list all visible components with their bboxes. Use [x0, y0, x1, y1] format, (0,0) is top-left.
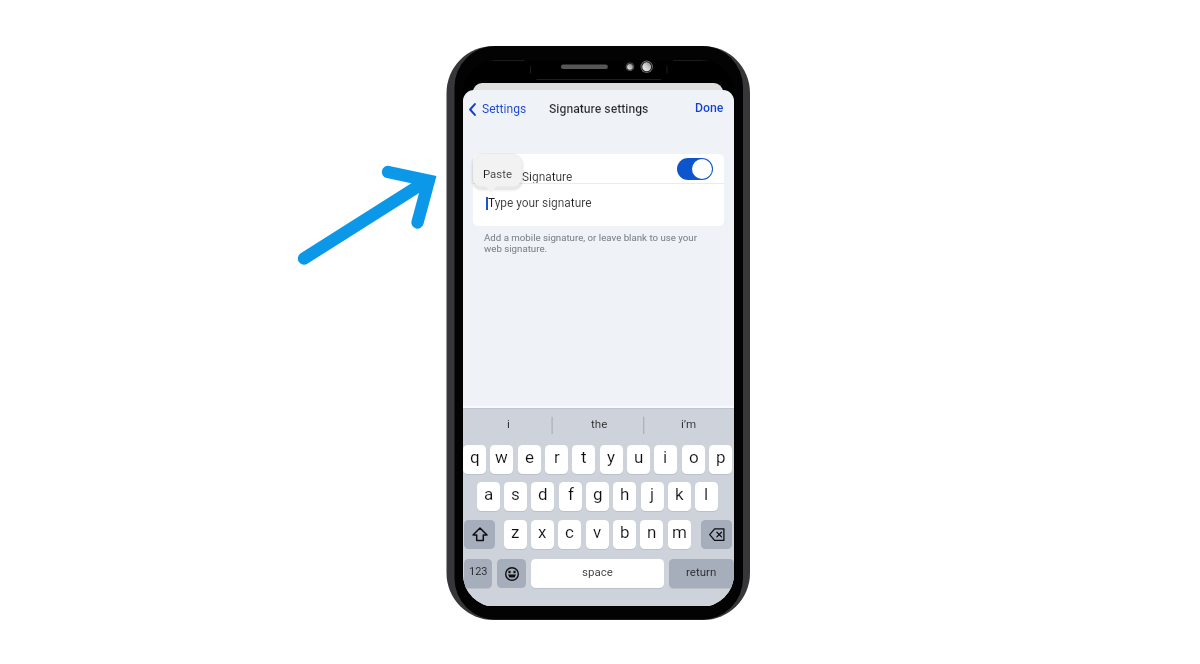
staticText: Signature settings [549, 102, 649, 116]
button[interactable]: h [613, 482, 636, 511]
button[interactable]: a [477, 482, 500, 511]
button[interactable]: Signature [473, 154, 724, 183]
staticText: a [484, 484, 494, 504]
staticText: r [554, 447, 560, 467]
staticText: f [568, 484, 574, 504]
button[interactable]: Settings [466, 100, 530, 120]
staticText: y [607, 447, 616, 467]
staticText: i’m [681, 417, 697, 431]
staticText: Paste [483, 167, 512, 180]
staticText: c [565, 522, 574, 542]
button[interactable]: e [518, 445, 541, 474]
staticText: space [582, 565, 613, 578]
button[interactable]: Paste [473, 154, 522, 187]
staticText: t [581, 447, 587, 467]
button[interactable]: Signature enabled [677, 158, 713, 180]
staticText: Add a mobile signature, or leave blank t… [484, 232, 700, 255]
button[interactable]: n [640, 520, 663, 549]
staticText: l [704, 484, 709, 504]
staticText: 123 [469, 565, 488, 578]
staticText: u [634, 447, 644, 467]
staticText: return [686, 565, 717, 578]
staticText: d [538, 484, 548, 504]
staticText: m [672, 522, 687, 542]
button[interactable]: i [654, 445, 677, 474]
staticText: z [511, 522, 520, 542]
button[interactable]: c [558, 520, 581, 549]
button[interactable]: Backspace [701, 520, 732, 549]
button[interactable]: w [490, 445, 513, 474]
button[interactable]: x [531, 520, 554, 549]
button[interactable]: m [668, 520, 691, 549]
button[interactable]: f [559, 482, 582, 511]
button[interactable]: t [572, 445, 595, 474]
staticText: i [663, 447, 668, 467]
button[interactable]: d [531, 482, 554, 511]
staticText: g [593, 484, 603, 504]
staticText: Type your signature [488, 196, 592, 210]
staticText: q [470, 447, 480, 467]
button[interactable]: Shift [464, 520, 495, 549]
button[interactable]: b [613, 520, 636, 549]
staticText: i [507, 417, 510, 431]
button[interactable]: 123 [464, 559, 492, 588]
button[interactable]: s [504, 482, 527, 511]
button[interactable]: z [504, 520, 527, 549]
button[interactable]: j [641, 482, 664, 511]
button[interactable]: Done [690, 99, 730, 120]
staticText: x [538, 522, 547, 542]
staticText: b [620, 522, 630, 542]
staticText: n [647, 522, 657, 542]
button[interactable]: return [669, 559, 734, 588]
button[interactable]: space [531, 559, 664, 588]
staticText: o [689, 447, 699, 467]
staticText: v [593, 522, 602, 542]
button[interactable]: o [682, 445, 705, 474]
button[interactable]: g [586, 482, 609, 511]
staticText: Done [695, 101, 724, 115]
staticText: Settings [482, 102, 527, 116]
staticText: k [675, 484, 684, 504]
button[interactable]: the [554, 409, 644, 441]
button[interactable]: i [463, 409, 554, 441]
staticText: the [591, 417, 608, 431]
button[interactable]: r [545, 445, 568, 474]
staticText: p [716, 447, 726, 467]
button[interactable]: i’m [644, 409, 734, 441]
staticText: h [620, 484, 630, 504]
button[interactable]: Emoji keyboard [497, 559, 526, 588]
button[interactable]: y [600, 445, 623, 474]
button[interactable]: v [586, 520, 609, 549]
button[interactable]: k [668, 482, 691, 511]
staticText: Signature [522, 170, 573, 184]
staticText: w [495, 447, 508, 467]
button[interactable]: q [463, 445, 486, 474]
staticText: s [511, 484, 520, 504]
button[interactable]: u [627, 445, 650, 474]
staticText: j [650, 484, 655, 504]
button[interactable]: l [695, 482, 718, 511]
staticText: e [525, 447, 535, 467]
button[interactable]: Type your signature [473, 184, 724, 226]
button[interactable]: p [709, 445, 732, 474]
